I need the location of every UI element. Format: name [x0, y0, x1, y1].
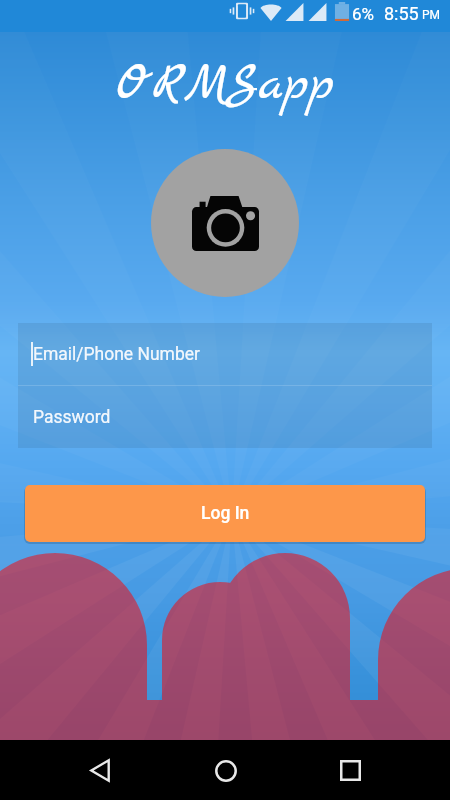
staticText: PM [422, 8, 441, 22]
staticText: Password [33, 407, 111, 428]
button[interactable]: Choose profile photo [151, 149, 299, 297]
button[interactable]: Log In [25, 485, 425, 542]
staticText: Email/Phone Number [33, 344, 201, 365]
button[interactable]: Home [203, 748, 248, 793]
button[interactable]: Email/Phone Number [18, 323, 432, 385]
staticText: 8:55 [384, 3, 419, 24]
staticText: ORMSapp [0, 54, 450, 118]
staticText: Log In [201, 503, 250, 524]
button[interactable]: Back [77, 748, 122, 793]
staticText: 6% [352, 4, 375, 24]
button[interactable]: Recent apps [328, 748, 373, 793]
button[interactable]: Password [18, 386, 432, 448]
